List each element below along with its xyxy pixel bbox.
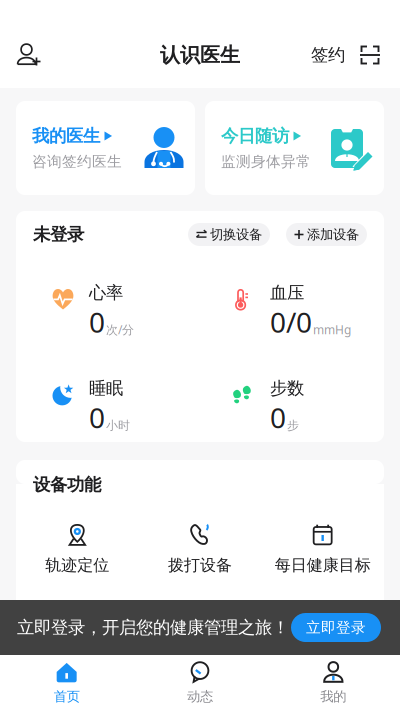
button[interactable]: 签约	[311, 33, 350, 77]
staticText: mmHg	[313, 321, 351, 337]
staticText: 今日随访	[221, 125, 289, 147]
staticText: 设备功能	[33, 474, 101, 495]
staticText: 步	[287, 418, 299, 433]
staticText: 轨迹定位	[45, 555, 109, 575]
staticText: 我的	[320, 688, 346, 705]
staticText: 次/分	[106, 321, 134, 337]
staticText: 0	[89, 399, 105, 436]
button[interactable]: 扫一扫	[350, 33, 390, 77]
button[interactable]: 今日随访	[205, 101, 384, 195]
staticText: 0/0	[270, 303, 312, 340]
button[interactable]: 添加好友	[11, 33, 47, 77]
button[interactable]: 动态	[133, 655, 267, 711]
staticText: 签约	[311, 44, 345, 66]
button[interactable]: 立即登录	[291, 613, 381, 642]
staticText: 小时	[106, 418, 130, 433]
button[interactable]: 轨迹定位	[16, 523, 139, 575]
button[interactable]: 我的医生	[16, 101, 195, 195]
staticText: 添加设备	[307, 226, 359, 243]
staticText: 咨询签约医生	[32, 153, 122, 171]
staticText: 立即登录，开启您的健康管理之旅！	[17, 617, 289, 638]
staticText: 步数	[270, 377, 304, 399]
staticText: 未登录	[33, 224, 84, 245]
staticText: 0	[89, 303, 105, 340]
staticText: 我的医生	[32, 125, 100, 147]
staticText: 拨打设备	[168, 555, 232, 575]
staticText: 首页	[54, 688, 80, 705]
staticText: 动态	[187, 688, 213, 705]
staticText: 0	[270, 399, 286, 436]
staticText: 睡眠	[89, 377, 123, 399]
staticText: 心率	[89, 282, 123, 303]
button[interactable]: 每日健康目标	[261, 523, 384, 575]
staticText: 切换设备	[210, 226, 262, 243]
staticText: 监测身体异常	[221, 153, 311, 171]
button[interactable]: 首页	[0, 655, 133, 711]
button[interactable]: 我的	[267, 655, 400, 711]
button[interactable]: 切换设备	[188, 223, 270, 246]
staticText: 血压	[270, 282, 304, 303]
staticText: 认识医生	[160, 43, 240, 67]
staticText: 每日健康目标	[275, 555, 371, 575]
button[interactable]: 拨打设备	[139, 523, 261, 575]
button[interactable]: 添加设备	[286, 223, 367, 246]
staticText: 立即登录	[306, 618, 366, 636]
